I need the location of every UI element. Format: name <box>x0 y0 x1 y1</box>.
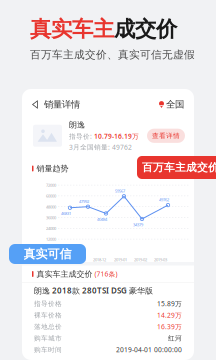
staticText: 查看详情 <box>152 132 180 140</box>
staticText: 46831 <box>61 211 71 216</box>
staticText: 2019-03 <box>154 257 167 262</box>
button[interactable]: 销量详情 <box>32 99 80 110</box>
staticText: 销量详情 <box>44 99 80 110</box>
staticText: 2019-04-01 00:00:00 <box>116 345 182 354</box>
staticText: 2019-01 <box>114 257 127 262</box>
staticText: 49762 <box>159 197 169 202</box>
staticText: 落地总价 <box>34 323 62 331</box>
staticText: 百万车主成交价 <box>142 161 216 174</box>
staticText: 40484 <box>97 216 107 222</box>
button[interactable]: 全国 <box>159 99 184 110</box>
staticText: 36000 <box>46 215 56 220</box>
staticText: 47992 <box>79 199 89 204</box>
staticText: 2018-12 <box>93 257 106 262</box>
button[interactable]: 查看详情 <box>147 129 185 143</box>
staticText: 72000 <box>46 183 56 188</box>
staticText: 12000 <box>46 237 56 242</box>
staticText: 购车城市 <box>34 334 62 342</box>
staticText: 2018-10 <box>53 257 66 262</box>
staticText: 成交价 <box>114 16 177 42</box>
staticText: 14.29万 <box>157 311 182 320</box>
staticText: 3月全国销量: 49762 <box>69 143 132 152</box>
staticText: 34379 <box>133 222 143 227</box>
staticText: 销量趋势 <box>36 164 68 173</box>
staticText: 裸车价格 <box>34 311 62 319</box>
staticText: 指导价格 <box>34 300 62 308</box>
staticText: 真实可信 <box>23 247 71 261</box>
staticText: 48000 <box>46 204 56 209</box>
staticText: 真实车主 <box>30 16 114 42</box>
staticText: 朗逸 <box>69 120 85 130</box>
staticText: 2019-02 <box>134 257 147 262</box>
staticText: 2018-11 <box>73 257 86 262</box>
staticText: 购车时间 <box>34 346 62 354</box>
staticText: 朗逸 2018款 280TSI DSG 豪华版 <box>34 285 153 296</box>
staticText: 15.89万 <box>157 299 182 308</box>
staticText: 10.79-16.19万 <box>94 132 139 141</box>
staticText: 指导价: <box>69 132 94 141</box>
staticText: 59567 <box>115 188 125 194</box>
staticText: 16.39万 <box>157 322 182 331</box>
staticText: 真实车主成交价 <box>36 269 92 279</box>
staticText: 60000 <box>46 193 56 199</box>
staticText: 百万车主成交价、真实可信无虚假 <box>30 48 195 61</box>
staticText: 24000 <box>46 226 56 231</box>
staticText: (716条) <box>94 270 117 278</box>
staticText: 全国 <box>166 99 184 110</box>
staticText: 红河 <box>168 334 182 342</box>
